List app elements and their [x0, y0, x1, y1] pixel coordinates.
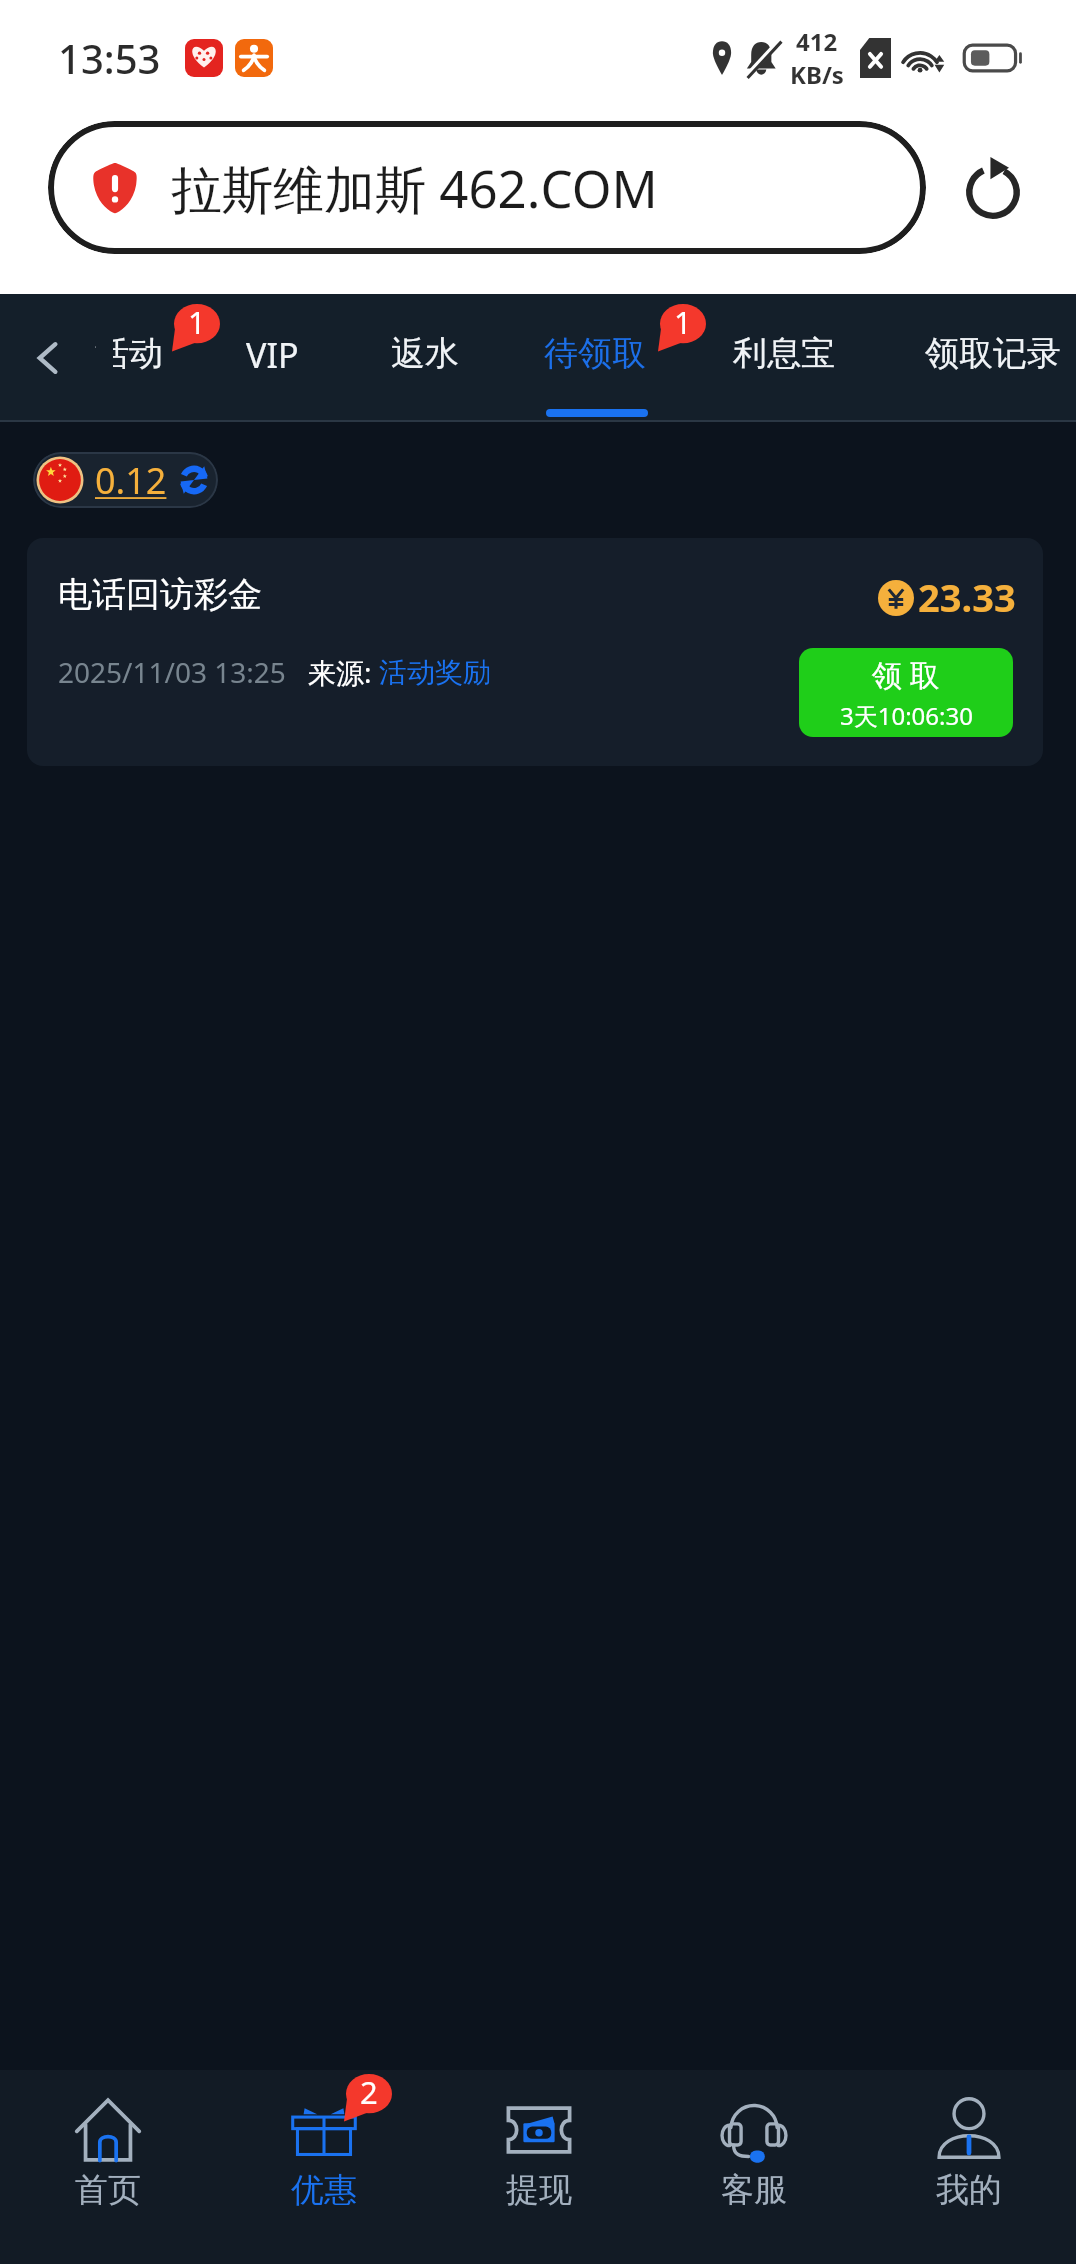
- staticText: 拉斯维加斯 462.COM: [171, 153, 658, 223]
- button[interactable]: 2: [216, 2070, 431, 2264]
- button[interactable]: Reload: [957, 151, 1029, 223]
- staticText: VIP: [246, 332, 299, 378]
- button[interactable]: 电话回访彩金: [27, 538, 1043, 766]
- staticText: 活动: [95, 332, 163, 375]
- button[interactable]: 待领取: [547, 294, 649, 422]
- staticText: 13:53: [58, 31, 161, 85]
- staticText: 2: [360, 2071, 378, 2113]
- button[interactable]: 客服: [646, 2070, 861, 2264]
- staticText: 来源:: [308, 653, 379, 691]
- staticText: 优惠: [291, 2169, 357, 2211]
- button[interactable]: 拉斯维加斯 462.COM: [48, 121, 926, 254]
- staticText: 返水: [391, 332, 459, 375]
- staticText: 412: [796, 25, 838, 58]
- staticText: 2025/11/03 13:25: [58, 653, 286, 691]
- staticText: 首页: [75, 2169, 141, 2211]
- staticText: 领取记录: [925, 332, 1061, 375]
- staticText: 1: [188, 301, 206, 343]
- staticText: 待领取: [544, 332, 646, 375]
- button[interactable]: 我的: [861, 2070, 1076, 2264]
- staticText: 1: [674, 301, 692, 343]
- staticText: 提现: [506, 2169, 572, 2211]
- button[interactable]: 返水: [394, 294, 462, 422]
- button[interactable]: 提现: [431, 2070, 646, 2264]
- button[interactable]: Back: [0, 294, 96, 422]
- button[interactable]: 0.12: [33, 452, 218, 508]
- button[interactable]: 领 取: [799, 648, 1013, 737]
- staticText: KB/s: [790, 58, 844, 91]
- staticText: 23.33: [918, 571, 1016, 623]
- button[interactable]: 利息宝: [736, 294, 838, 422]
- staticText: 我的: [936, 2169, 1002, 2211]
- staticText: 电话回访彩金: [58, 573, 262, 616]
- staticText: 活动奖励: [379, 655, 491, 690]
- staticText: 利息宝: [733, 332, 835, 375]
- staticText: 3天10:06:30: [840, 699, 973, 732]
- staticText: 领 取: [872, 654, 940, 695]
- staticText: 0.12: [95, 456, 167, 505]
- button[interactable]: 领取记录: [928, 294, 1064, 422]
- button[interactable]: VIP: [249, 294, 311, 422]
- button[interactable]: 首页: [0, 2070, 216, 2264]
- button[interactable]: 活动: [106, 294, 157, 422]
- staticText: 客服: [721, 2169, 787, 2211]
